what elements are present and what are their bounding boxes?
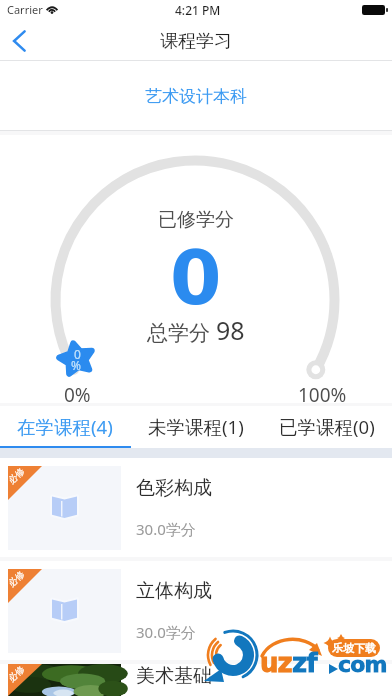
button[interactable]: 必修	[0, 458, 392, 557]
staticText: 98	[216, 313, 245, 347]
staticText: 色彩构成	[136, 476, 212, 500]
button[interactable]: Back	[0, 21, 40, 61]
button[interactable]: 未学课程(1)	[130, 406, 261, 446]
staticText: 0	[74, 346, 81, 362]
staticText: 30.0学分	[136, 622, 196, 642]
staticText: 立体构成	[136, 579, 212, 603]
staticText: Carrier	[7, 2, 43, 17]
button[interactable]: 必修	[0, 561, 392, 660]
staticText: 乐坡下载	[332, 641, 376, 655]
staticText: %	[71, 357, 81, 373]
button[interactable]: 必修	[0, 664, 392, 696]
staticText: 美术基础	[136, 664, 212, 688]
staticText: 30.0学分	[136, 519, 196, 539]
staticText: 0	[170, 235, 222, 321]
staticText: uz	[260, 648, 292, 678]
staticText: zf	[292, 648, 317, 678]
button[interactable]: 在学课程(4)	[0, 406, 130, 446]
staticText: com	[338, 652, 387, 678]
button[interactable]: 艺术设计本科	[0, 61, 392, 131]
staticText: 必修	[6, 568, 26, 589]
staticText: 0%	[64, 382, 91, 408]
staticText: 总学分	[147, 318, 216, 347]
staticText: 4:21 PM	[175, 2, 221, 18]
staticText: 100%	[298, 382, 347, 408]
staticText: 在学课程(4)	[17, 414, 113, 439]
staticText: 必修	[6, 663, 26, 684]
staticText: 未学课程(1)	[148, 414, 244, 439]
staticText: 已学课程(0)	[279, 414, 375, 439]
staticText: 已修学分	[158, 208, 234, 232]
staticText: 必修	[6, 465, 26, 486]
staticText: 艺术设计本科	[145, 86, 247, 107]
staticText: 课程学习	[160, 30, 232, 53]
button[interactable]: 已学课程(0)	[261, 406, 392, 446]
